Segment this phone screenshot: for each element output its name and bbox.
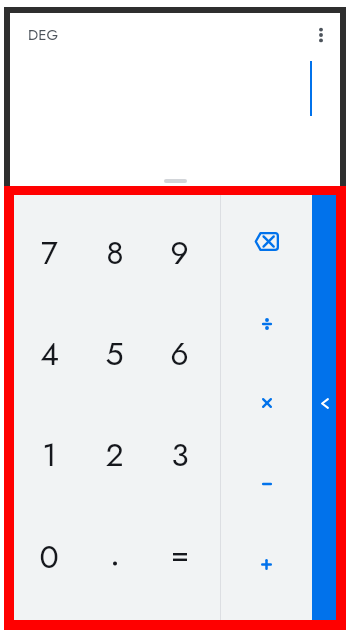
staticText: 2: [105, 432, 124, 478]
button[interactable]: =: [147, 506, 212, 608]
staticText: 8: [106, 230, 124, 276]
button[interactable]: Multiply: [221, 362, 312, 443]
staticText: 6: [170, 331, 189, 377]
button[interactable]: Subtract: [221, 443, 312, 524]
button[interactable]: 9: [147, 202, 212, 303]
button[interactable]: 8: [82, 202, 147, 303]
button[interactable]: 2: [82, 404, 147, 506]
button[interactable]: Add: [221, 524, 312, 605]
button[interactable]: Show scientific pad: [312, 195, 336, 620]
button[interactable]: 7: [16, 202, 82, 303]
button[interactable]: 6: [147, 303, 212, 404]
staticText: 0: [39, 534, 59, 580]
staticText: 7: [41, 230, 58, 276]
staticText: 5: [105, 331, 124, 377]
staticText: 3: [171, 432, 189, 478]
button[interactable]: 3: [147, 404, 212, 506]
button[interactable]: 0: [16, 506, 82, 608]
button[interactable]: 1: [16, 404, 82, 506]
button[interactable]: Divide: [221, 281, 312, 362]
button[interactable]: 4: [16, 303, 82, 404]
button[interactable]: Backspace: [221, 201, 312, 281]
staticText: 1: [42, 432, 57, 478]
button[interactable]: 5: [82, 303, 147, 404]
staticText: 9: [170, 230, 189, 276]
staticText: 4: [40, 331, 59, 377]
button[interactable]: DEG: [18, 17, 69, 53]
button[interactable]: Drag handle: [164, 179, 187, 183]
button[interactable]: More options: [309, 23, 333, 47]
staticText: DEG: [28, 24, 59, 46]
button[interactable]: .: [82, 506, 147, 608]
